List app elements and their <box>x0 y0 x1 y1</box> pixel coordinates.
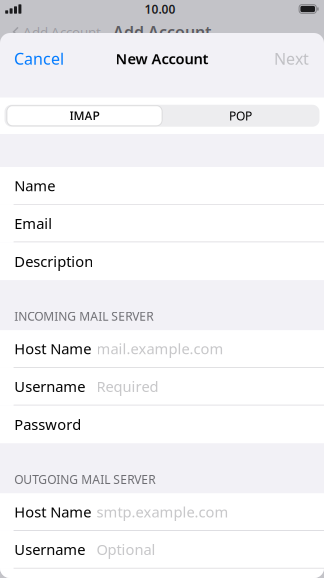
button[interactable]: Host Name <box>0 493 324 531</box>
button[interactable]: Email <box>0 205 324 242</box>
staticText: POP <box>229 108 252 124</box>
staticText: Description <box>14 251 93 271</box>
staticText: mail.example.com <box>96 339 223 358</box>
staticText: Password <box>14 415 81 434</box>
button[interactable]: POP <box>163 105 318 127</box>
staticText: Name <box>14 176 55 195</box>
staticText: Username <box>14 540 85 559</box>
staticText: Host Name <box>14 339 91 358</box>
staticText: Host Name <box>14 502 91 521</box>
button[interactable]: Host Name <box>0 330 324 368</box>
staticText: INCOMING MAIL SERVER <box>14 308 153 324</box>
staticText: OUTGOING MAIL SERVER <box>14 471 155 487</box>
button[interactable]: Username <box>0 368 324 405</box>
button[interactable]: Cancel <box>0 33 78 84</box>
button[interactable]: Next <box>259 33 324 84</box>
button[interactable]: Description <box>0 242 324 280</box>
staticText: Add Account <box>23 23 101 41</box>
staticText: Next <box>274 48 309 69</box>
button[interactable]: IMAP <box>6 105 163 127</box>
staticText: Optional <box>96 540 155 559</box>
staticText: 10.00 <box>144 1 175 17</box>
staticText: New Account <box>115 49 208 68</box>
button[interactable]: Username <box>0 531 324 569</box>
staticText: Required <box>96 377 158 396</box>
button[interactable]: Password <box>0 405 324 443</box>
button[interactable]: Name <box>0 167 324 205</box>
staticText: smtp.example.com <box>96 502 228 521</box>
staticText: Email <box>14 213 52 233</box>
staticText: Cancel <box>14 48 64 69</box>
staticText: Add Account <box>113 21 211 42</box>
staticText: Username <box>14 377 85 396</box>
staticText: IMAP <box>69 108 99 124</box>
